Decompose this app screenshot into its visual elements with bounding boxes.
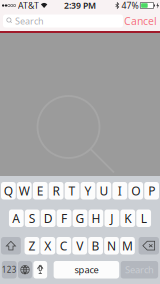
staticText: P [148, 183, 155, 199]
button[interactable]: W [17, 182, 32, 199]
staticText: D [44, 210, 53, 226]
button[interactable]: Next keyboard [18, 261, 32, 278]
button[interactable]: Search [121, 261, 158, 278]
button[interactable]: Q [1, 182, 16, 199]
button[interactable]: J [104, 209, 119, 227]
staticText: L [141, 210, 147, 226]
button[interactable]: 123 [2, 261, 17, 278]
staticText: Search [125, 264, 154, 276]
staticText: X [44, 238, 51, 254]
staticText: K [124, 210, 131, 226]
button[interactable]: Y [81, 182, 95, 199]
button[interactable]: Z [25, 237, 39, 254]
button[interactable]: R [49, 182, 63, 199]
button[interactable]: Dictate [33, 261, 47, 278]
button[interactable]: M [120, 237, 135, 254]
button[interactable]: H [89, 209, 103, 227]
staticText: T [68, 183, 75, 199]
staticText: Y [84, 183, 91, 199]
staticText: Z [28, 238, 35, 254]
button[interactable]: C [56, 237, 71, 254]
button[interactable]: G [73, 209, 87, 227]
button[interactable]: P [144, 182, 159, 199]
staticText: AT&T [18, 0, 39, 11]
staticText: M [122, 238, 133, 254]
button[interactable]: F [57, 209, 71, 227]
staticText: F [61, 210, 67, 226]
staticText: B [92, 238, 100, 254]
button[interactable]: T [65, 182, 79, 199]
staticText: space [74, 264, 98, 276]
staticText: J [110, 210, 113, 226]
button[interactable]: L [136, 209, 151, 227]
button[interactable]: Shift [1, 237, 21, 254]
button[interactable]: A [9, 209, 24, 227]
button[interactable]: B [88, 237, 103, 254]
staticText: H [91, 210, 100, 226]
button[interactable]: U [96, 182, 111, 199]
button[interactable]: Delete [139, 237, 159, 254]
staticText: S [29, 210, 36, 226]
button[interactable]: O [128, 182, 143, 199]
staticText: G [75, 210, 84, 226]
button[interactable]: Cancel [124, 14, 160, 28]
button[interactable]: I [112, 182, 127, 199]
staticText: 47% [122, 0, 139, 11]
button[interactable]: S [25, 209, 40, 227]
button[interactable]: D [41, 209, 55, 227]
button[interactable]: E [33, 182, 47, 199]
button[interactable]: X [40, 237, 55, 254]
staticText: Cancel [124, 14, 157, 28]
staticText: R [53, 183, 60, 199]
staticText: Q [4, 183, 13, 199]
staticText: I [118, 183, 122, 199]
staticText: A [12, 210, 20, 226]
staticText: 123 [2, 264, 17, 275]
button[interactable]: N [104, 237, 119, 254]
button[interactable]: V [72, 237, 87, 254]
staticText: N [107, 238, 116, 254]
staticText: Search [15, 15, 44, 27]
staticText: V [76, 238, 83, 254]
staticText: E [37, 183, 44, 199]
staticText: U [99, 183, 108, 199]
button[interactable]: K [120, 209, 135, 227]
staticText: 2:39 PM [64, 0, 96, 11]
staticText: O [131, 183, 140, 199]
staticText: W [19, 183, 30, 199]
staticText: C [60, 238, 68, 254]
button[interactable]: Search [3, 14, 123, 27]
button[interactable]: space [54, 261, 119, 278]
